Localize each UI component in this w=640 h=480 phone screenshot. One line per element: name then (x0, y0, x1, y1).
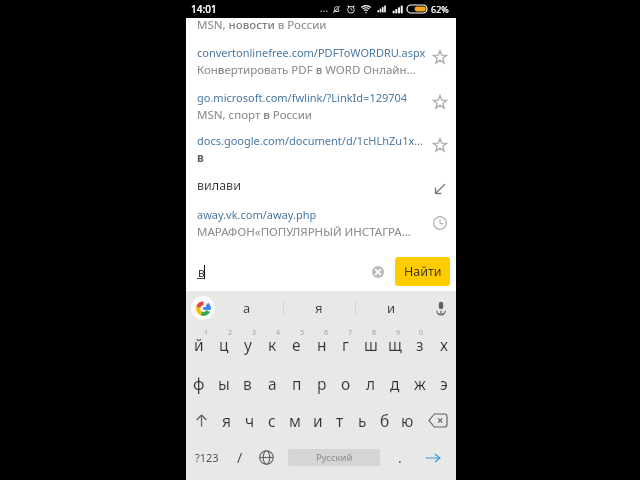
staticText: ж (414, 373, 426, 394)
staticText: go.microsoft.com/fwlink/?LinkId=129704 (197, 90, 408, 105)
staticText: и (387, 299, 396, 317)
button[interactable]: г (333, 323, 358, 366)
button[interactable]: ь (351, 399, 374, 442)
button[interactable]: Add bookmark (428, 133, 452, 157)
button[interactable]: ю (396, 399, 419, 442)
button[interactable]: м (283, 399, 306, 442)
button[interactable]: р (309, 362, 334, 405)
staticText: away.vk.com/away.php (197, 207, 317, 222)
button[interactable]: з (407, 323, 432, 366)
staticText: щ (388, 334, 402, 355)
button[interactable]: ф (186, 362, 211, 405)
staticText: а (268, 373, 277, 394)
staticText: 3 (252, 328, 257, 338)
button[interactable]: б (373, 399, 396, 442)
button[interactable]: ч (238, 399, 261, 442)
button[interactable]: я (215, 399, 238, 442)
button[interactable]: Clear query (367, 261, 389, 283)
button[interactable]: . (388, 436, 412, 479)
staticText: с (268, 410, 276, 431)
staticText: MSN, новости в России (197, 17, 327, 33)
button[interactable]: х (431, 323, 456, 366)
staticText: ю (401, 410, 414, 431)
button[interactable]: т (328, 399, 351, 442)
staticText: ч (245, 410, 255, 431)
staticText: 8 (372, 328, 377, 338)
button[interactable]: э (431, 362, 456, 405)
button[interactable]: Voice input (428, 295, 454, 321)
button[interactable]: к (260, 323, 285, 366)
staticText: 0 (419, 328, 424, 338)
button[interactable]: ж (407, 362, 432, 405)
staticText: 62% (431, 3, 449, 15)
staticText: и (313, 410, 323, 431)
staticText: я (222, 410, 231, 431)
button[interactable]: и (306, 399, 329, 442)
button[interactable]: Add bookmark (428, 90, 452, 114)
staticText: 6 (324, 328, 329, 338)
button[interactable]: / (227, 436, 253, 479)
button[interactable]: у (235, 323, 260, 366)
staticText: Найти (404, 263, 442, 280)
staticText: й (194, 334, 204, 355)
button[interactable]: н (309, 323, 334, 366)
staticText: / (237, 448, 243, 467)
button[interactable]: Switch language (253, 436, 279, 479)
button[interactable]: Recent search (428, 211, 452, 235)
staticText: в (197, 150, 204, 166)
staticText: вилави (197, 177, 241, 194)
button[interactable]: Insert query (428, 177, 452, 201)
button[interactable]: Google search (191, 296, 215, 320)
staticText: МАРАФОН«ПОПУЛЯРНЫЙ ИНСТАГРА… (197, 224, 411, 240)
staticText: . (398, 448, 402, 467)
staticText: э (440, 373, 448, 394)
staticText: л (366, 373, 376, 394)
button[interactable]: л (358, 362, 383, 405)
button[interactable]: away.vk.com/away.php (186, 207, 456, 243)
button[interactable]: в (235, 362, 260, 405)
button[interactable]: Shift (186, 399, 217, 442)
button[interactable]: docs.google.com/document/d/1cHLhZu1x… (186, 133, 456, 169)
staticText: г (342, 334, 349, 355)
staticText: в (243, 373, 252, 394)
button[interactable]: е (284, 323, 309, 366)
button[interactable]: Русский (288, 449, 380, 466)
button[interactable]: с (260, 399, 283, 442)
button[interactable]: щ (382, 323, 407, 366)
button[interactable]: Найти (395, 257, 450, 286)
staticText: Русский (316, 451, 353, 464)
staticText: а (243, 299, 251, 317)
staticText: д (390, 373, 400, 394)
button[interactable]: ш (358, 323, 383, 366)
staticText: н (317, 334, 327, 355)
staticText: в (198, 264, 205, 280)
button[interactable]: д (382, 362, 407, 405)
button[interactable]: Add bookmark (428, 45, 452, 69)
button[interactable]: вилави (186, 177, 456, 203)
button[interactable]: а (211, 291, 283, 325)
button[interactable]: ?123 (186, 436, 227, 479)
staticText: ц (219, 334, 229, 355)
staticText: я (315, 299, 323, 317)
button[interactable]: а (260, 362, 285, 405)
button[interactable]: и (355, 291, 427, 325)
button[interactable]: й (186, 323, 211, 366)
button[interactable]: я (283, 291, 355, 325)
staticText: т (336, 410, 344, 431)
button[interactable]: MSN, новости в России (186, 17, 456, 33)
button[interactable]: Backspace (420, 399, 456, 442)
staticText: MSN, спорт в России (197, 107, 312, 123)
button[interactable]: convertonlinefree.com/PDFToWORDRU.aspx (186, 45, 456, 81)
staticText: 4 (276, 328, 281, 338)
staticText: Конвертировать PDF в WORD Онлайн… (197, 62, 416, 78)
staticText: п (292, 373, 302, 394)
staticText: м (289, 410, 301, 431)
button[interactable]: ы (211, 362, 236, 405)
button[interactable]: о (333, 362, 358, 405)
staticText: з (416, 334, 424, 355)
button[interactable]: Search (413, 436, 453, 479)
button[interactable]: ц (211, 323, 236, 366)
button[interactable]: go.microsoft.com/fwlink/?LinkId=129704 (186, 90, 456, 126)
button[interactable]: п (284, 362, 309, 405)
staticText: е (292, 334, 301, 355)
